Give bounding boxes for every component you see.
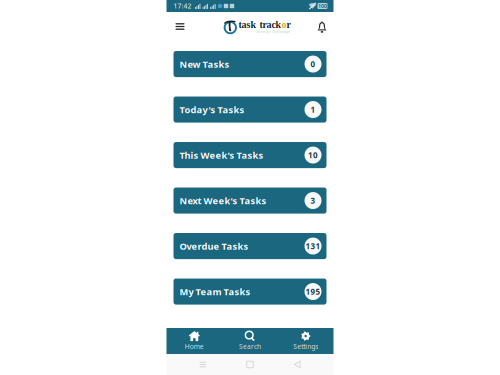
staticText: Home bbox=[185, 342, 204, 351]
button[interactable]: Next Week's Tasks bbox=[173, 187, 326, 214]
button[interactable]: Menu bbox=[169, 13, 190, 40]
staticText: Strategic Advantage bbox=[256, 29, 290, 34]
button[interactable]: Search bbox=[222, 328, 278, 354]
staticText: task track bbox=[238, 19, 281, 30]
staticText: Settings bbox=[293, 342, 318, 351]
staticText: This Week's Tasks bbox=[179, 149, 263, 161]
staticText: 10 bbox=[308, 150, 318, 160]
button[interactable]: Settings bbox=[278, 328, 333, 354]
staticText: Overdue Tasks bbox=[179, 240, 248, 252]
staticText: 195 bbox=[305, 286, 320, 297]
button[interactable]: New Tasks bbox=[173, 51, 326, 77]
button[interactable]: Back bbox=[286, 354, 308, 374]
button[interactable]: Home bbox=[239, 354, 261, 374]
staticText: 0 bbox=[310, 59, 315, 69]
staticText: Search bbox=[239, 342, 261, 351]
button[interactable]: My Team Tasks bbox=[173, 278, 326, 305]
staticText: 100 bbox=[318, 2, 327, 10]
staticText: o bbox=[281, 19, 286, 30]
button[interactable]: Overdue Tasks bbox=[173, 233, 326, 259]
staticText: Next Week's Tasks bbox=[179, 194, 266, 207]
button[interactable]: Notifications bbox=[312, 13, 331, 40]
staticText: My Team Tasks bbox=[179, 285, 250, 298]
staticText: Today's Tasks bbox=[179, 103, 244, 116]
staticText: r bbox=[286, 19, 290, 30]
button[interactable]: This Week's Tasks bbox=[173, 142, 326, 168]
staticText: 3 bbox=[310, 195, 315, 206]
staticText: 131 bbox=[305, 241, 320, 251]
staticText: 1 bbox=[310, 104, 315, 115]
button[interactable]: Home bbox=[166, 328, 222, 354]
button[interactable]: Recents bbox=[192, 354, 214, 374]
staticText: New Tasks bbox=[179, 58, 229, 70]
staticText: 17:42 bbox=[173, 2, 191, 10]
button[interactable]: Today's Tasks bbox=[173, 96, 326, 123]
